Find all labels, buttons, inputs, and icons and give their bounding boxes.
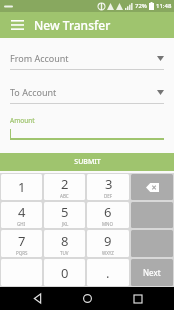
button[interactable]: 9 [87,230,129,257]
button[interactable]: 5 [44,202,85,228]
staticText: Amount [10,116,35,125]
staticText: New Transfer [34,17,111,33]
staticText: 3 [105,175,113,193]
staticText: WXYZ [102,250,114,256]
staticText: 0 [61,264,69,282]
staticText: Next [143,267,161,278]
staticText: 9 [104,232,112,250]
staticText: 4 [18,203,26,221]
staticText: 1 [18,178,26,196]
button[interactable]: Next [131,259,173,286]
staticText: . [106,264,110,282]
staticText: SUBMIT [74,157,101,167]
staticText: 11:48 [156,2,172,10]
staticText: 7 [18,232,26,250]
button[interactable]: Backspace [131,174,173,200]
button[interactable]: 8 [44,230,85,257]
staticText: PQRS [16,250,28,256]
button[interactable]: Recent apps [124,287,152,310]
staticText: To Account [10,86,157,98]
button[interactable]: Amount [10,116,164,140]
button[interactable]: SUBMIT [0,153,174,171]
button[interactable]: 0 [44,259,85,286]
button[interactable]: Back [23,287,51,310]
button[interactable]: Open navigation menu [0,12,34,38]
staticText: ABC [60,193,69,199]
button[interactable]: 2 [44,174,85,200]
staticText: JKL [62,221,69,227]
button[interactable]: 7 [1,230,42,257]
button[interactable]: To Account [10,86,164,104]
staticText: MNO [102,221,114,227]
button[interactable]: 3 [87,174,129,200]
button[interactable]: From Account [10,52,164,70]
staticText: 2 [61,175,69,193]
staticText: 6 [104,203,112,221]
button[interactable]: 6 [87,202,129,228]
button[interactable]: 1 [1,174,42,200]
staticText: DEF [104,193,113,199]
staticText: 72% [135,2,147,10]
staticText: 5 [61,203,69,221]
staticText: From Account [10,52,157,64]
staticText: 8 [61,232,69,250]
button[interactable]: . [87,259,129,286]
button[interactable]: Home [73,287,101,310]
staticText: GHI [17,221,26,227]
button[interactable]: 4 [1,202,42,228]
staticText: TUV [60,250,69,256]
